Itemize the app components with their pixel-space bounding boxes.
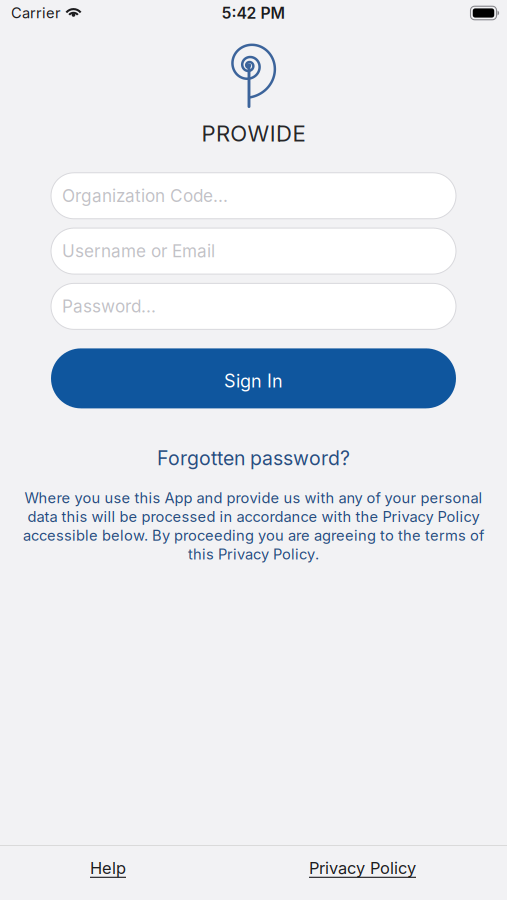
button[interactable]: Organization Code... <box>51 173 456 219</box>
staticText: data this will be processed in accordanc… <box>27 508 479 525</box>
staticText: Password... <box>62 296 156 317</box>
staticText: Forgotten password? <box>157 446 350 470</box>
button[interactable]: Help <box>90 858 126 878</box>
button[interactable]: Privacy Policy <box>309 858 416 878</box>
button[interactable]: Sign In <box>51 348 456 408</box>
button[interactable]: Forgotten password? <box>157 446 350 470</box>
staticText: Sign In <box>224 370 283 392</box>
staticText: Where you use this App and provide us wi… <box>24 489 482 507</box>
staticText: this Privacy Policy. <box>188 545 319 563</box>
staticText: Carrier <box>11 4 61 22</box>
staticText: Help <box>90 858 126 878</box>
staticText: accessible below. By proceeding you are … <box>23 526 484 544</box>
staticText: 5:42 PM <box>221 3 285 22</box>
staticText: Username or Email <box>62 241 215 261</box>
button[interactable]: Password... <box>51 283 456 329</box>
staticText: PROWIDE <box>202 120 305 147</box>
staticText: Privacy Policy <box>309 858 416 878</box>
staticText: Organization Code... <box>62 185 228 206</box>
button[interactable]: Username or Email <box>51 228 456 274</box>
